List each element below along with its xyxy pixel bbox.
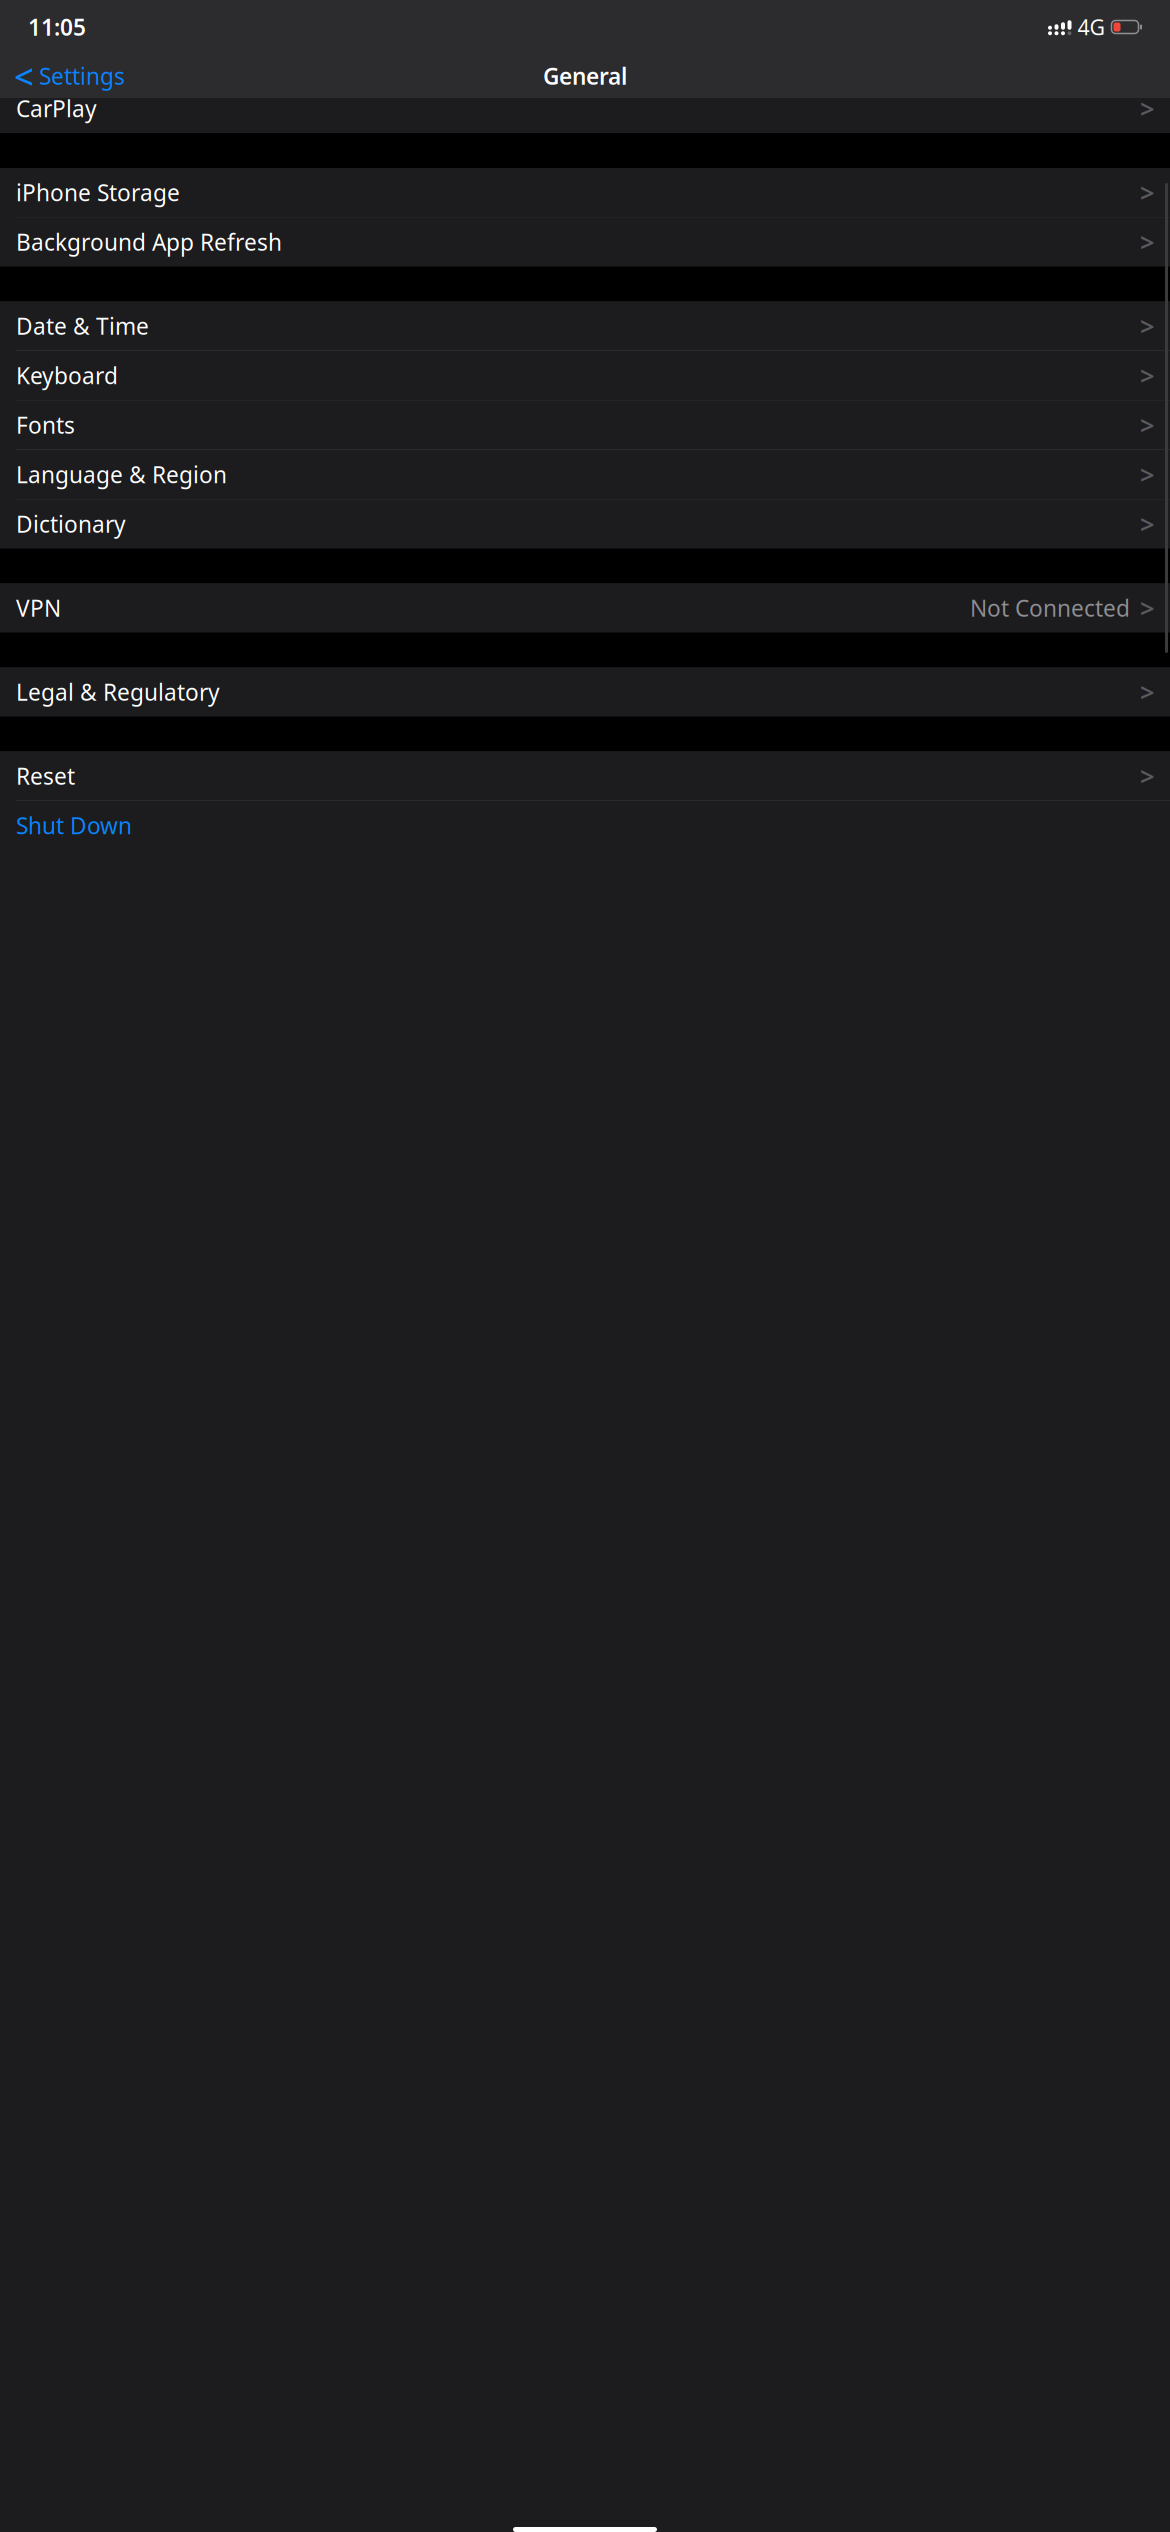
staticText: VPN xyxy=(16,593,61,623)
staticText: > xyxy=(1140,591,1154,625)
button[interactable]: Background App Refresh xyxy=(0,217,1170,266)
staticText: General xyxy=(543,61,627,91)
button[interactable]: Fonts xyxy=(0,400,1170,449)
staticText: Language & Region xyxy=(16,459,227,489)
button[interactable]: iPhone Storage xyxy=(0,168,1170,217)
staticText: Fonts xyxy=(16,410,75,440)
staticText: Not Connected xyxy=(970,593,1130,623)
staticText: 11:05 xyxy=(28,12,86,42)
staticText: iPhone Storage xyxy=(16,177,180,207)
staticText: > xyxy=(1140,408,1154,442)
staticText: > xyxy=(1140,176,1154,209)
staticText: > xyxy=(1140,759,1154,793)
staticText: > xyxy=(1140,359,1154,392)
staticText: Keyboard xyxy=(16,360,118,390)
staticText: < xyxy=(14,53,34,99)
button[interactable]: Legal & Regulatory xyxy=(0,667,1170,716)
staticText: 4G xyxy=(1077,13,1105,41)
staticText: Settings xyxy=(39,61,125,91)
staticText: > xyxy=(1140,458,1154,491)
button[interactable]: Date & Time xyxy=(0,301,1170,350)
button[interactable]: CarPlay xyxy=(0,84,1170,133)
staticText: Background App Refresh xyxy=(16,227,282,257)
button[interactable]: Dictionary xyxy=(0,499,1170,548)
button[interactable]: Keyboard xyxy=(0,351,1170,400)
staticText: > xyxy=(1140,309,1154,343)
button[interactable]: Shut Down xyxy=(0,801,1170,850)
button[interactable]: Language & Region xyxy=(0,450,1170,499)
staticText: Reset xyxy=(16,761,75,791)
staticText: > xyxy=(1140,507,1154,541)
staticText: Legal & Regulatory xyxy=(16,677,220,707)
button[interactable]: VPN xyxy=(0,583,1170,632)
staticText: Date & Time xyxy=(16,311,149,341)
staticText: CarPlay xyxy=(16,93,97,123)
staticText: > xyxy=(1140,92,1154,125)
staticText: > xyxy=(1140,225,1154,259)
button[interactable]: Reset xyxy=(0,751,1170,800)
staticText: > xyxy=(1140,675,1154,709)
button[interactable]: Back to Settings xyxy=(6,54,133,98)
staticText: Dictionary xyxy=(16,509,126,539)
staticText: Shut Down xyxy=(16,810,132,840)
